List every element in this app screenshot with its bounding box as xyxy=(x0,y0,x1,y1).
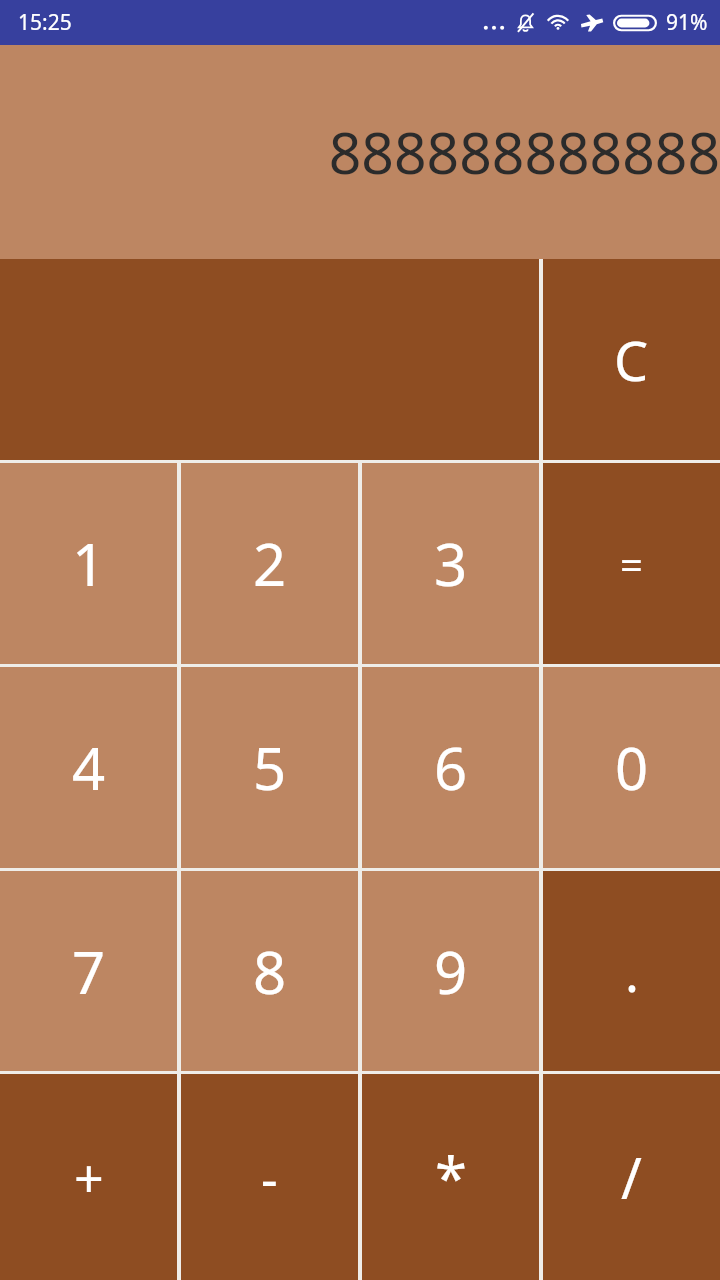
button[interactable]: 9 xyxy=(362,871,539,1071)
button[interactable]: * xyxy=(362,1074,539,1280)
staticText: * xyxy=(435,1138,467,1217)
button[interactable]: 4 xyxy=(0,667,177,868)
staticText: 5 xyxy=(253,728,287,807)
button[interactable]: 7 xyxy=(0,871,177,1071)
staticText: / xyxy=(621,1139,642,1215)
staticText: 6 xyxy=(434,728,468,807)
button[interactable]: C xyxy=(543,259,720,460)
staticText: 9 xyxy=(434,932,468,1011)
staticText: C xyxy=(614,323,649,397)
staticText: 3 xyxy=(434,524,468,603)
button[interactable]: 8 xyxy=(181,871,358,1071)
button[interactable]: = xyxy=(543,463,720,664)
button[interactable]: 2 xyxy=(181,463,358,664)
staticText: . xyxy=(625,936,639,1007)
staticText: 4 xyxy=(72,728,106,807)
button[interactable]: 0 xyxy=(543,667,720,868)
staticText: 91% xyxy=(666,8,708,37)
staticText: + xyxy=(74,1142,104,1213)
button[interactable]: 1 xyxy=(0,463,177,664)
staticText: 8 xyxy=(253,932,287,1011)
button[interactable]: . xyxy=(543,871,720,1071)
staticText: 15:25 xyxy=(18,8,72,37)
button[interactable]: 3 xyxy=(362,463,539,664)
staticText: - xyxy=(261,1142,278,1213)
staticText: 2 xyxy=(253,524,287,603)
button[interactable]: 5 xyxy=(181,667,358,868)
staticText: 0 xyxy=(615,728,649,807)
button[interactable]: / xyxy=(543,1074,720,1280)
staticText: = xyxy=(620,537,643,591)
staticText: 7 xyxy=(72,932,106,1011)
button[interactable]: + xyxy=(0,1074,177,1280)
button[interactable]: 6 xyxy=(362,667,539,868)
staticText: 1 xyxy=(72,524,106,603)
staticText: 888888888888 xyxy=(0,113,720,191)
button[interactable]: - xyxy=(181,1074,358,1280)
